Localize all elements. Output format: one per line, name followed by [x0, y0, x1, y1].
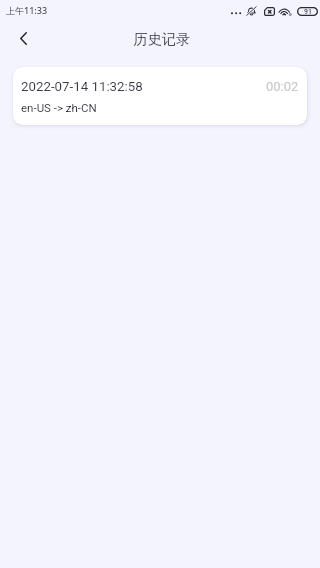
- staticText: 上午11:33: [6, 4, 48, 16]
- staticText: 历史记录: [133, 30, 191, 48]
- button[interactable]: Back: [0, 24, 44, 52]
- staticText: 00:02: [266, 79, 299, 94]
- staticText: en-US -> zh-CN: [21, 101, 97, 114]
- button[interactable]: 2022-07-14 11:32:58: [13, 67, 307, 125]
- staticText: 2022-07-14 11:32:58: [21, 79, 143, 95]
- staticText: 91: [304, 8, 312, 16]
